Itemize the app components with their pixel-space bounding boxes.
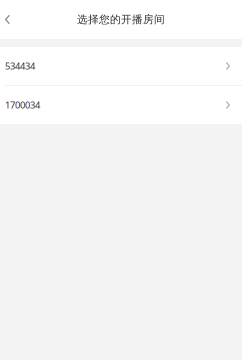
button[interactable]: 1700034 xyxy=(0,86,242,124)
button[interactable]: Back xyxy=(0,0,23,39)
staticText: 选择您的开播房间 xyxy=(77,13,165,26)
staticText: 1700034 xyxy=(5,99,40,111)
staticText: 534434 xyxy=(5,60,35,72)
button[interactable]: 534434 xyxy=(0,47,242,85)
